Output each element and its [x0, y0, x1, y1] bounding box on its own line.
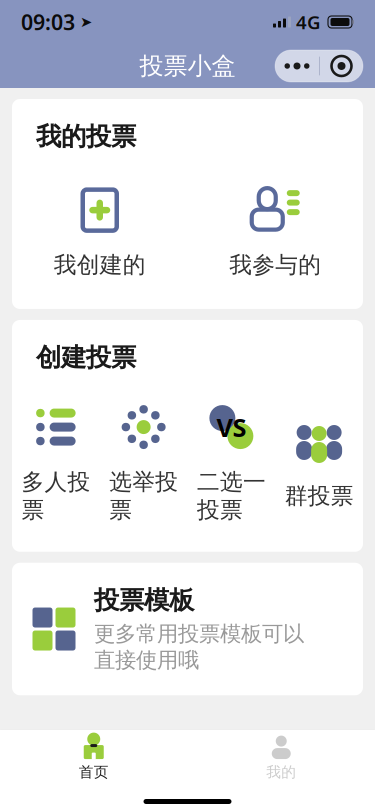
staticText: 二选一投票 [197, 468, 266, 524]
staticText: 创建投票 [36, 342, 136, 373]
button[interactable]: 群投票 [275, 413, 363, 514]
staticText: 我的 [266, 763, 296, 781]
staticText: 我创建的 [54, 251, 146, 279]
staticText: 群投票 [285, 482, 354, 510]
button[interactable]: 投票模板 [0, 563, 375, 695]
staticText: 投票模板 [94, 585, 194, 616]
staticText: 4G [296, 10, 321, 34]
staticText: 首页 [79, 763, 109, 781]
button[interactable]: 我的 [187, 727, 375, 781]
staticText: 投票小盒 [139, 51, 235, 81]
button[interactable]: 选举投票 [100, 399, 188, 528]
button[interactable]: 我参与的 [187, 182, 363, 283]
button[interactable]: 我创建的 [12, 182, 187, 283]
staticText: 我的投票 [36, 121, 136, 152]
staticText: 09:03 [21, 8, 75, 36]
staticText: 我参与的 [229, 251, 321, 279]
staticText: 选举投票 [109, 468, 178, 524]
button[interactable]: 首页 [0, 727, 187, 781]
staticText: 更多常用投票模板可以直接使用哦 [94, 621, 304, 673]
button[interactable]: 多人投票 [12, 399, 100, 528]
button[interactable]: VS [187, 399, 275, 528]
button[interactable]: 更多 [275, 50, 363, 82]
staticText: 多人投票 [21, 468, 90, 524]
staticText: ➤ [80, 14, 92, 30]
staticText: VS [216, 410, 246, 444]
